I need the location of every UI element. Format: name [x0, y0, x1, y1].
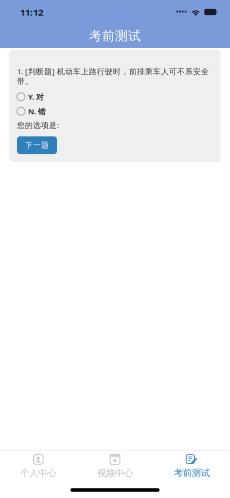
staticText: 11:12	[20, 5, 43, 19]
button[interactable]: 视频中心	[77, 449, 153, 482]
button[interactable]: N. 错	[17, 106, 213, 117]
staticText: N. 错	[28, 106, 46, 117]
staticText: 下一题	[25, 140, 49, 150]
staticText: 视频中心	[97, 467, 133, 479]
button[interactable]: Y. 对	[17, 91, 213, 102]
staticText: 您的选项是:	[17, 120, 59, 130]
button[interactable]: 个人中心	[0, 449, 77, 482]
staticText: 个人中心	[20, 467, 56, 479]
button[interactable]: 下一题	[17, 136, 57, 154]
button[interactable]: 考前测试	[153, 449, 230, 482]
staticText: 1. [判断题] 机动车上路行驶时，前排乘车人可不系安全带。	[17, 66, 209, 86]
staticText: Y. 对	[28, 91, 44, 102]
staticText: 考前测试	[89, 28, 141, 44]
staticText: 考前测试	[174, 467, 210, 479]
